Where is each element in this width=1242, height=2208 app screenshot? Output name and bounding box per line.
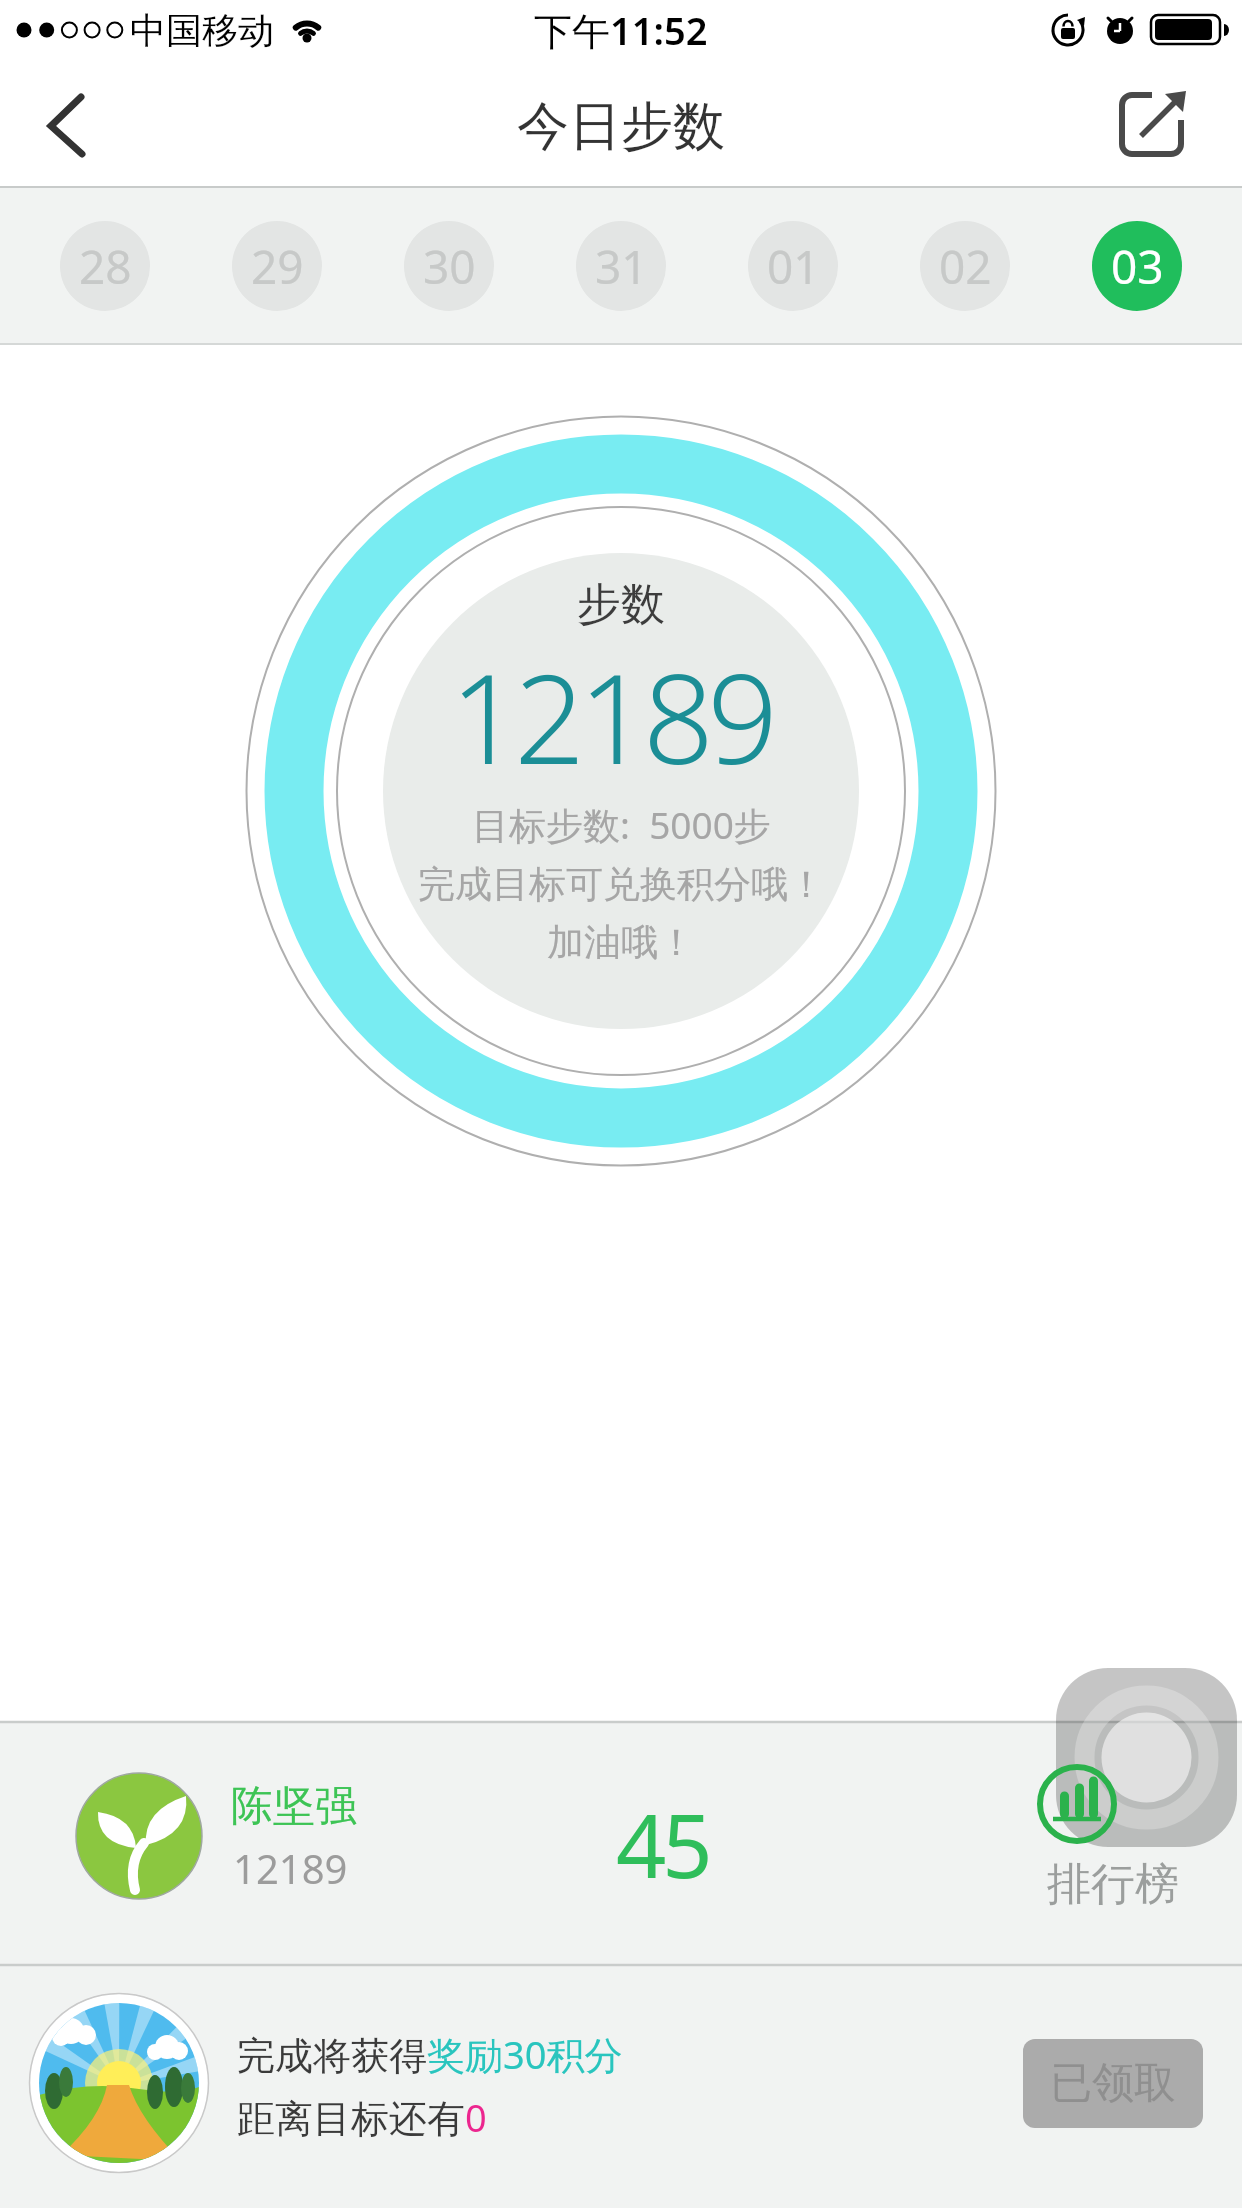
- button[interactable]: [1056, 1668, 1237, 1847]
- button[interactable]: 02: [920, 221, 1010, 311]
- staticText: 29: [251, 235, 304, 298]
- staticText: 今日步数: [517, 94, 725, 160]
- button[interactable]: [30, 1740, 450, 1930]
- button[interactable]: 30: [404, 221, 494, 311]
- staticText: 28: [79, 235, 132, 298]
- staticText: 排行榜: [1047, 1857, 1179, 1912]
- staticText: 加油哦！: [547, 919, 695, 966]
- staticText: 步数: [577, 577, 665, 632]
- staticText: 31: [595, 235, 648, 298]
- button[interactable]: 31: [576, 221, 666, 311]
- staticText: 01: [767, 235, 820, 298]
- button[interactable]: [20, 80, 120, 180]
- button[interactable]: 03: [1092, 221, 1182, 311]
- staticText: 已领取: [1050, 2057, 1176, 2110]
- button[interactable]: [1030, 1755, 1200, 1915]
- staticText: 45: [616, 1784, 709, 1904]
- staticText: 目标步数: 5000步: [472, 799, 771, 850]
- button[interactable]: 已领取: [1023, 2039, 1203, 2128]
- staticText: 距离目标还有0: [237, 2091, 487, 2143]
- button[interactable]: 01: [748, 221, 838, 311]
- staticText: 12189: [233, 1841, 348, 1895]
- button[interactable]: [1100, 80, 1200, 180]
- staticText: 12189: [450, 631, 772, 800]
- staticText: 02: [939, 235, 992, 298]
- button[interactable]: 28: [60, 221, 150, 311]
- button[interactable]: 29: [232, 221, 322, 311]
- staticText: 03: [1111, 235, 1164, 298]
- staticText: 中国移动: [130, 8, 274, 53]
- staticText: 完成目标可兑换积分哦！: [418, 861, 825, 908]
- staticText: 完成将获得奖励30积分: [237, 2028, 623, 2080]
- staticText: 下午11:52: [534, 4, 708, 56]
- staticText: 陈坚强: [231, 1780, 357, 1833]
- staticText: 30: [423, 235, 476, 298]
